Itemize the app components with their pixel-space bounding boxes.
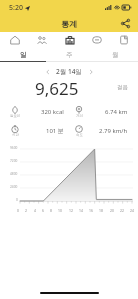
button[interactable]: Previous day <box>42 66 53 77</box>
staticText: 2.79 km/h <box>99 127 128 135</box>
staticText: 0 <box>17 208 19 213</box>
staticText: 9600 <box>10 146 18 150</box>
button[interactable]: 주 <box>46 48 92 61</box>
staticText: 월 <box>112 51 119 59</box>
staticText: 10 <box>58 208 62 213</box>
button[interactable]: 속도 <box>69 121 133 140</box>
button[interactable]: 시간 <box>5 121 69 140</box>
staticText: 5:20 <box>9 3 23 13</box>
button[interactable]: Next day <box>85 66 96 77</box>
staticText: 통계 <box>61 19 77 29</box>
staticText: 101 분 <box>46 127 64 135</box>
staticText: 시간 <box>12 133 19 137</box>
staticText: 20 <box>110 208 114 213</box>
button[interactable]: Friends <box>29 32 54 48</box>
staticText: 일 <box>20 51 27 59</box>
staticText: 주 <box>66 51 73 59</box>
staticText: 18 <box>99 208 103 213</box>
staticText: 6 <box>42 208 44 213</box>
staticText: 8 <box>50 208 52 213</box>
staticText: 22 <box>120 208 124 213</box>
button[interactable]: Home <box>2 32 27 48</box>
staticText: 칼로리 <box>10 114 21 118</box>
staticText: 6.74 km <box>105 108 128 116</box>
staticText: 24 <box>130 208 134 213</box>
staticText: 2 <box>25 208 27 213</box>
staticText: 7200 <box>10 159 18 163</box>
staticText: 0 <box>16 198 18 202</box>
staticText: 거리 <box>76 114 83 118</box>
staticText: 4800 <box>10 172 18 176</box>
staticText: 4 <box>34 208 36 213</box>
staticText: 걸음 <box>117 84 128 91</box>
staticText: 속도 <box>76 133 83 137</box>
button[interactable]: 일 <box>0 48 46 61</box>
staticText: 16 <box>89 208 93 213</box>
button[interactable]: Messages <box>84 32 109 48</box>
staticText: 320 kcal <box>41 108 64 116</box>
staticText: 14 <box>79 208 83 213</box>
button[interactable]: Fitness <box>57 32 82 48</box>
staticText: 2월 14일 <box>56 67 82 76</box>
staticText: 9,625 <box>35 77 79 98</box>
button[interactable]: Reports <box>111 32 136 48</box>
button[interactable]: 월 <box>92 48 138 61</box>
button[interactable]: 칼로리 <box>5 102 69 121</box>
button[interactable]: Share <box>118 16 133 31</box>
staticText: 12 <box>69 208 73 213</box>
staticText: 2400 <box>10 185 18 189</box>
button[interactable]: 거리 <box>69 102 133 121</box>
